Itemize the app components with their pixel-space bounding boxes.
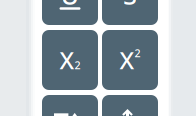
button[interactable]: Subscript	[42, 30, 98, 90]
staticText: U	[60, 0, 79, 12]
staticText: X	[59, 44, 74, 76]
button[interactable]: Superscript	[102, 30, 158, 90]
button[interactable]: Underline	[42, 0, 98, 25]
button[interactable]: Text size	[42, 95, 98, 116]
staticText: S	[123, 0, 137, 12]
staticText: 2	[134, 46, 140, 60]
button[interactable]: Increase text size	[102, 95, 158, 116]
button[interactable]: Strikethrough	[102, 0, 158, 25]
staticText: X	[119, 44, 134, 76]
staticText: 2	[74, 58, 80, 72]
